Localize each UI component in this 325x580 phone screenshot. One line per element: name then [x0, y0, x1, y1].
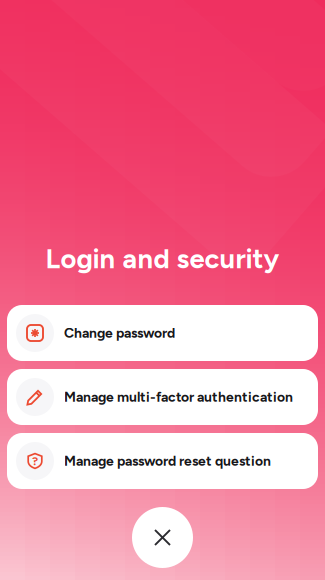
staticText: Manage multi-factor authentication [64, 389, 293, 405]
button[interactable]: ? [7, 433, 318, 489]
button[interactable]: Change password [7, 305, 318, 361]
button[interactable]: Close [132, 507, 193, 568]
button[interactable]: Manage multi-factor authentication [7, 369, 318, 425]
staticText: ? [32, 454, 38, 468]
staticText: Manage password reset question [64, 453, 271, 469]
staticText: Login and security [45, 242, 279, 275]
staticText: Change password [64, 325, 175, 341]
